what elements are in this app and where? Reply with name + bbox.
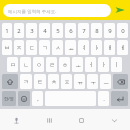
button[interactable]: ㅠ bbox=[74, 74, 85, 89]
button[interactable]: Send bbox=[113, 3, 127, 17]
button[interactable]: 한/영 bbox=[2, 91, 16, 106]
staticText: 5 bbox=[56, 27, 60, 35]
button[interactable]: ㅕ bbox=[78, 40, 89, 55]
staticText: ㅎ bbox=[62, 61, 68, 69]
button[interactable]: 0 bbox=[117, 23, 128, 38]
button[interactable]: ㅣ bbox=[111, 57, 122, 72]
button[interactable]: 7 bbox=[78, 23, 89, 38]
button[interactable]: ㅓ bbox=[85, 57, 96, 72]
button[interactable]: 5 bbox=[52, 23, 63, 38]
button[interactable]: ㄷ bbox=[26, 40, 37, 55]
button[interactable]: ㅌ bbox=[34, 74, 46, 89]
button[interactable]: ㅊ bbox=[48, 74, 59, 89]
button[interactable]: Shift bbox=[2, 74, 18, 89]
button[interactable]: ㅋ bbox=[20, 74, 32, 89]
button[interactable]: 6 bbox=[65, 23, 76, 38]
button[interactable]: 9 bbox=[104, 23, 115, 38]
staticText: ㅕ bbox=[81, 44, 87, 52]
button[interactable]: ㅗ bbox=[72, 57, 83, 72]
staticText: ㅐ bbox=[107, 44, 113, 52]
button[interactable]: Enter bbox=[111, 91, 128, 106]
staticText: 8 bbox=[95, 27, 99, 35]
button[interactable]: Recent apps bbox=[42, 113, 56, 127]
button[interactable]: ㄹ bbox=[46, 57, 57, 72]
staticText: ㅁ bbox=[10, 61, 16, 69]
button[interactable]: ㄱ bbox=[39, 40, 50, 55]
button[interactable]: ㅇ bbox=[33, 57, 44, 72]
button[interactable]: 2 bbox=[14, 23, 24, 38]
button[interactable]: , bbox=[32, 91, 43, 106]
staticText: ㅍ bbox=[64, 78, 70, 86]
button[interactable]: ㅡ bbox=[100, 74, 111, 89]
button[interactable]: ㅛ bbox=[65, 40, 76, 55]
button[interactable]: ㅑ bbox=[91, 40, 102, 55]
staticText: 7 bbox=[82, 27, 86, 35]
staticText: ㅓ bbox=[88, 61, 94, 69]
staticText: ㅠ bbox=[77, 78, 83, 86]
button[interactable]: ㅅ bbox=[52, 40, 63, 55]
staticText: ㅂ bbox=[4, 44, 10, 52]
staticText: ㅣ bbox=[114, 61, 120, 69]
staticText: 6 bbox=[69, 27, 73, 35]
button[interactable]: 1 bbox=[2, 23, 12, 38]
staticText: 메시지를 입력해 주세요. bbox=[8, 8, 57, 14]
staticText: 9 bbox=[108, 27, 112, 35]
button[interactable]: ㅐ bbox=[104, 40, 115, 55]
staticText: ㅅ bbox=[55, 44, 61, 52]
button[interactable]: ㅜ bbox=[87, 74, 98, 89]
button[interactable]: ㅍ bbox=[61, 74, 72, 89]
staticText: ㄴ bbox=[23, 61, 29, 69]
staticText: ㄷ bbox=[29, 44, 35, 52]
staticText: ㅔ bbox=[120, 44, 126, 52]
staticText: ㅛ bbox=[68, 44, 74, 52]
button[interactable]: 3 bbox=[26, 23, 37, 38]
button[interactable]: 메시지를 입력해 주세요. bbox=[3, 4, 111, 17]
staticText: ㄹ bbox=[49, 61, 55, 69]
staticText: ㅜ bbox=[90, 78, 96, 86]
button[interactable]: 4 bbox=[39, 23, 50, 38]
staticText: ㅋ bbox=[23, 78, 29, 86]
staticText: ㅊ bbox=[51, 78, 57, 86]
button[interactable]: ㄴ bbox=[20, 57, 31, 72]
staticText: 2 bbox=[17, 27, 21, 35]
button[interactable]: ㅈ bbox=[14, 40, 24, 55]
staticText: 0 bbox=[121, 27, 125, 35]
staticText: 3 bbox=[30, 27, 34, 35]
staticText: ㅏ bbox=[101, 61, 107, 69]
staticText: . bbox=[103, 95, 105, 103]
button[interactable]: ㅎ bbox=[59, 57, 70, 72]
staticText: ㅈ bbox=[16, 44, 22, 52]
staticText: 한/영 bbox=[4, 96, 14, 101]
button[interactable]: ㅁ bbox=[7, 57, 18, 72]
staticText: ㅗ bbox=[75, 61, 81, 69]
staticText: 4 bbox=[43, 27, 47, 35]
staticText: , bbox=[37, 95, 39, 103]
staticText: ㄱ bbox=[42, 44, 48, 52]
button[interactable]: Hide keyboard bbox=[107, 113, 121, 127]
button[interactable]: ㅔ bbox=[117, 40, 128, 55]
staticText: ㅌ bbox=[37, 78, 43, 86]
button[interactable]: ㅏ bbox=[98, 57, 109, 72]
staticText: ㅇ bbox=[36, 61, 42, 69]
button[interactable]: ㅂ bbox=[2, 40, 12, 55]
staticText: ㅡ bbox=[103, 78, 109, 86]
staticText: ㅑ bbox=[94, 44, 100, 52]
staticText: 1 bbox=[5, 27, 9, 35]
button[interactable]: 8 bbox=[91, 23, 102, 38]
button[interactable]: Emoji bbox=[18, 91, 30, 106]
button[interactable]: Backspace bbox=[113, 74, 128, 89]
button[interactable]: . bbox=[98, 91, 109, 106]
button[interactable]: Home bbox=[74, 113, 88, 127]
button[interactable]: Voice input bbox=[9, 113, 23, 127]
